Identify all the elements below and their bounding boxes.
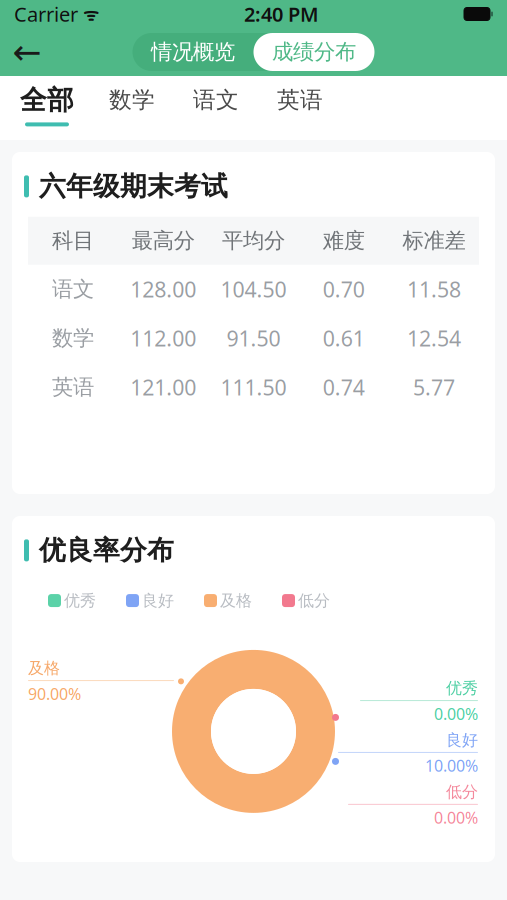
staticText: 情况概览 <box>151 39 235 65</box>
staticText: 标准差 <box>402 228 465 254</box>
staticText: 科目 <box>52 228 94 254</box>
staticText: 优良率分布 <box>39 534 174 567</box>
staticText: Carrier <box>14 1 78 27</box>
staticText: 低分 <box>298 591 330 610</box>
staticText: 111.50 <box>220 373 286 401</box>
staticText: 10.00% <box>425 755 478 776</box>
staticText: 91.50 <box>226 324 280 352</box>
staticText: 语文 <box>193 86 239 114</box>
staticText: 0.70 <box>323 275 365 303</box>
button[interactable]: 全部 <box>4 76 90 134</box>
staticText: 11.58 <box>407 275 461 303</box>
staticText: 12.54 <box>407 324 461 352</box>
staticText: 及格 <box>28 658 60 678</box>
staticText: 难度 <box>323 228 365 254</box>
staticText: 数学 <box>52 325 94 351</box>
staticText: ← <box>12 32 41 72</box>
staticText: 121.00 <box>130 373 196 401</box>
staticText: 六年级期末考试 <box>39 170 228 203</box>
staticText: 全部 <box>20 84 74 116</box>
staticText: 英语 <box>277 86 323 114</box>
staticText: 成绩分布 <box>272 39 356 65</box>
staticText: 0.74 <box>323 373 365 401</box>
staticText: 90.00% <box>28 683 81 704</box>
staticText: 0.00% <box>434 807 478 828</box>
staticText: 2:40 PM <box>244 1 319 27</box>
staticText: 良好 <box>446 730 478 750</box>
staticText: 平均分 <box>222 228 285 254</box>
staticText: 良好 <box>142 591 174 610</box>
staticText: 数学 <box>109 86 155 114</box>
staticText: 低分 <box>446 782 478 802</box>
staticText: 5.77 <box>413 373 455 401</box>
staticText: 104.50 <box>220 275 286 303</box>
staticText: 语文 <box>52 276 94 302</box>
staticText: 0.61 <box>323 324 365 352</box>
staticText: 128.00 <box>130 275 196 303</box>
staticText: 英语 <box>52 374 94 400</box>
staticText: 最高分 <box>132 228 195 254</box>
staticText: 及格 <box>220 591 252 610</box>
button[interactable]: 情况概览 <box>132 33 253 71</box>
staticText: ᯤ <box>78 2 99 25</box>
button[interactable]: Back <box>0 30 54 74</box>
button[interactable]: 语文 <box>174 76 258 134</box>
button[interactable]: 数学 <box>90 76 174 134</box>
staticText: 112.00 <box>130 324 196 352</box>
button[interactable]: 成绩分布 <box>253 33 374 71</box>
button[interactable]: 英语 <box>258 76 342 134</box>
staticText: 优秀 <box>64 591 96 610</box>
staticText: 0.00% <box>434 703 478 724</box>
staticText: 优秀 <box>446 678 478 698</box>
